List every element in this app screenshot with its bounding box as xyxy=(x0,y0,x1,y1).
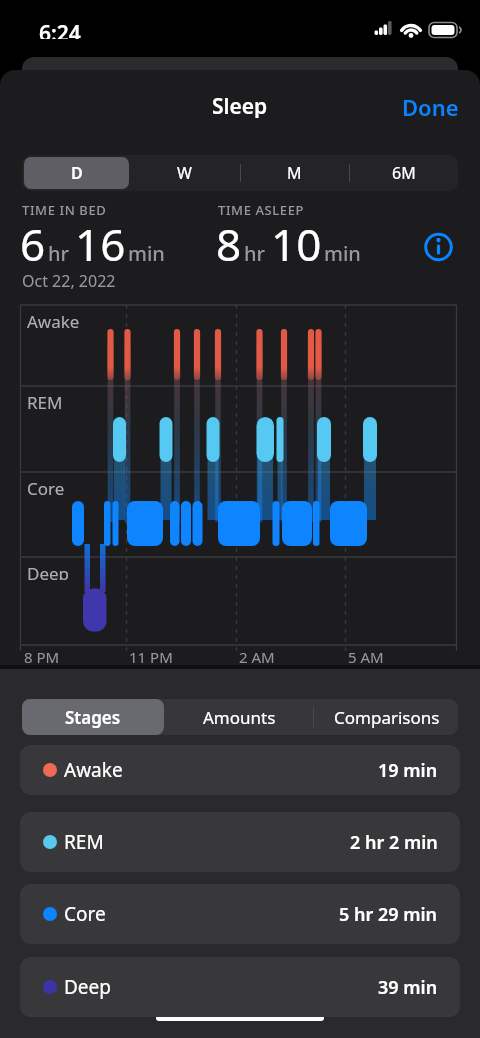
button[interactable]: Awake xyxy=(20,745,460,795)
staticText: M xyxy=(287,162,302,184)
staticText: Done xyxy=(402,92,459,118)
staticText: Awake xyxy=(27,310,80,328)
staticText: hr xyxy=(244,240,265,267)
staticText: Deep xyxy=(64,974,111,1000)
staticText: 8 PM xyxy=(24,647,60,664)
staticText: Comparisons xyxy=(334,706,440,729)
button[interactable] xyxy=(424,233,453,262)
staticText: 6:24 xyxy=(39,19,81,39)
staticText: Core xyxy=(27,477,65,495)
staticText: 5 AM xyxy=(348,647,384,664)
button[interactable]: REM xyxy=(20,812,460,872)
staticText: 6M xyxy=(392,162,416,184)
staticText: 2 hr 2 min xyxy=(350,830,438,855)
staticText: 6 xyxy=(20,214,46,274)
staticText: 19 min xyxy=(378,758,438,783)
button[interactable]: Comparisons xyxy=(316,699,458,735)
staticText: REM xyxy=(64,829,104,855)
staticText: TIME IN BED xyxy=(22,201,107,217)
staticText: W xyxy=(177,162,192,184)
staticText: 11 PM xyxy=(129,647,173,664)
staticText: 5 hr 29 min xyxy=(339,902,438,927)
button[interactable]: Core xyxy=(20,884,460,944)
staticText: Oct 22, 2022 xyxy=(22,270,116,290)
staticText: REM xyxy=(27,391,63,409)
staticText: 8 xyxy=(216,214,242,274)
staticText: Deep xyxy=(27,562,70,580)
staticText: Amounts xyxy=(203,706,276,729)
staticText: 39 min xyxy=(378,975,438,1000)
staticText: 16 xyxy=(75,214,126,274)
staticText: D xyxy=(71,162,83,184)
button[interactable]: Deep xyxy=(20,957,460,1017)
button[interactable]: 6M xyxy=(350,157,457,189)
staticText: Core xyxy=(64,901,106,927)
staticText: hr xyxy=(48,240,69,267)
staticText: TIME ASLEEP xyxy=(218,201,305,217)
staticText: 10 xyxy=(271,214,322,274)
staticText: min xyxy=(324,240,361,267)
staticText: Awake xyxy=(64,757,123,783)
staticText: 2 AM xyxy=(239,647,275,664)
staticText: min xyxy=(128,240,165,267)
button[interactable]: Done xyxy=(340,92,459,118)
button[interactable]: Stages xyxy=(22,699,164,735)
button[interactable]: M xyxy=(240,157,348,189)
staticText: Sleep xyxy=(212,92,268,118)
button[interactable]: Amounts xyxy=(168,699,310,735)
staticText: Stages xyxy=(65,706,121,729)
button[interactable]: W xyxy=(131,157,238,189)
button[interactable]: D xyxy=(24,157,129,189)
